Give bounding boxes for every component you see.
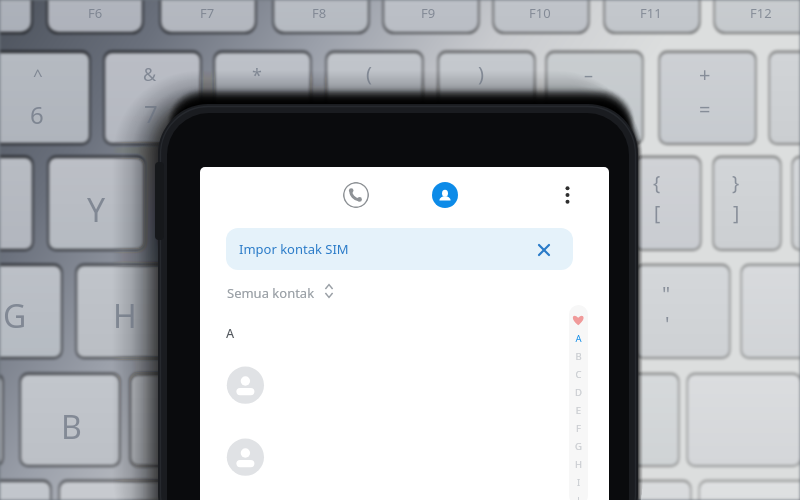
staticText: ^: [33, 63, 43, 86]
staticText: J: [569, 494, 588, 500]
staticText: F: [569, 422, 588, 435]
staticText: A: [569, 332, 588, 345]
staticText: –: [584, 63, 593, 88]
button[interactable]: [200, 349, 609, 421]
staticText: F11: [640, 4, 662, 22]
staticText: ": [662, 280, 671, 307]
staticText: E: [569, 404, 588, 417]
staticText: F7: [200, 4, 215, 22]
staticText: F8: [312, 4, 327, 22]
button[interactable]: Semua kontak: [221, 279, 341, 305]
staticText: 7: [144, 97, 158, 130]
staticText: ': [665, 310, 670, 337]
staticText: {: [653, 170, 661, 196]
staticText: 6: [30, 98, 44, 131]
staticText: Semua kontak: [227, 284, 315, 302]
staticText: +: [699, 61, 711, 88]
staticText: ]: [733, 200, 740, 226]
button[interactable]: Alphabet index: [569, 305, 588, 500]
button[interactable]: Impor kontak SIM: [226, 228, 573, 270]
staticText: (: [366, 60, 372, 87]
staticText: G: [3, 294, 27, 338]
staticText: C: [569, 368, 588, 381]
staticText: Y: [87, 188, 106, 232]
staticText: *: [252, 63, 262, 88]
staticText: B: [569, 350, 588, 363]
button[interactable]: Dismiss: [533, 239, 555, 261]
staticText: }: [732, 170, 740, 196]
button[interactable]: [200, 421, 609, 493]
button[interactable]: Calls: [343, 182, 369, 208]
staticText: H: [569, 458, 588, 471]
staticText: F6: [88, 4, 103, 22]
staticText: ): [478, 60, 484, 87]
staticText: H: [113, 294, 137, 338]
staticText: F9: [421, 4, 436, 22]
staticText: F12: [750, 4, 772, 22]
staticText: B: [61, 405, 82, 449]
button[interactable]: Contacts: [432, 182, 458, 208]
staticText: A: [226, 325, 235, 342]
staticText: D: [569, 386, 588, 399]
staticText: =: [699, 96, 711, 123]
staticText: [: [654, 200, 661, 226]
staticText: F10: [529, 4, 551, 22]
staticText: G: [569, 440, 588, 453]
staticText: &: [143, 62, 157, 87]
staticText: Impor kontak SIM: [239, 240, 349, 258]
staticText: I: [569, 476, 588, 489]
button[interactable]: More options: [556, 180, 579, 210]
